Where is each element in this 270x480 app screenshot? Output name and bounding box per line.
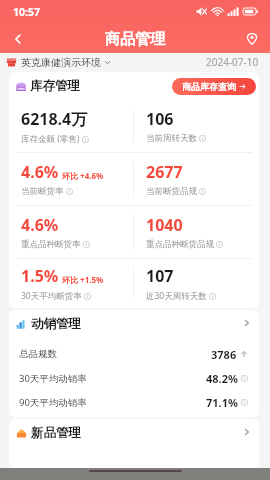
staticText: 1040	[146, 214, 183, 236]
button[interactable]: 动销管理	[9, 310, 259, 342]
staticText: 环比 +4.6%	[62, 170, 104, 181]
button[interactable]: 总品规数	[9, 342, 259, 366]
staticText: 48.2%	[206, 371, 238, 386]
button[interactable]: 4.6%	[9, 206, 133, 258]
button[interactable]: 90天平均动销率	[9, 390, 259, 414]
staticText: 重点品种断货率	[21, 239, 81, 250]
button[interactable]: Back	[6, 27, 30, 51]
staticText: 当前断货品规	[146, 186, 197, 197]
staticText: 30天平均断货率	[21, 290, 82, 302]
staticText: 近30天周转天数	[146, 290, 207, 302]
button[interactable]: 1040	[134, 206, 259, 258]
button[interactable]: 106	[134, 100, 259, 152]
staticText: 库存管理	[30, 78, 80, 94]
staticText: 商品库存查询	[182, 81, 236, 92]
staticText: 6218.4万	[21, 108, 88, 130]
button[interactable]: 6218.4万	[9, 100, 133, 152]
staticText: 4.6%	[21, 161, 59, 183]
button[interactable]: 107	[134, 259, 259, 308]
staticText: 71.1%	[206, 395, 238, 410]
staticText: 1.5%	[21, 265, 59, 287]
staticText: 商品管理	[105, 30, 165, 49]
button[interactable]: 英克康健演示环境	[6, 56, 111, 69]
staticText: 当前断货率	[21, 186, 64, 197]
button[interactable]: 商品库存查询	[172, 78, 256, 95]
staticText: 总品规数	[19, 348, 57, 360]
staticText: 2024-07-10	[206, 55, 259, 69]
button[interactable]: 2677	[134, 153, 259, 205]
staticText: 新品管理	[31, 425, 81, 441]
button[interactable]: Location	[240, 27, 264, 51]
button[interactable]: 新品管理	[9, 419, 259, 451]
button[interactable]: 1.5%	[9, 259, 133, 308]
button[interactable]: 30天平均动销率	[9, 366, 259, 390]
staticText: 英克康健演示环境	[21, 56, 101, 69]
staticText: 90天平均动销率	[19, 396, 87, 409]
staticText: 动销管理	[31, 316, 81, 332]
staticText: 2677	[146, 161, 183, 183]
staticText: 107	[146, 265, 174, 287]
staticText: 当前周转天数	[146, 133, 197, 144]
button[interactable]: 4.6%	[9, 153, 133, 205]
staticText: 重点品种断货品规	[146, 239, 214, 250]
staticText: 库存金额 (零售)	[21, 133, 80, 145]
staticText: 10:57	[13, 5, 40, 19]
staticText: 环比 +1.5%	[62, 274, 104, 285]
staticText: 3786	[211, 347, 237, 362]
staticText: 4.6%	[21, 214, 59, 236]
staticText: 30天平均动销率	[19, 372, 87, 385]
staticText: 106	[146, 108, 174, 130]
